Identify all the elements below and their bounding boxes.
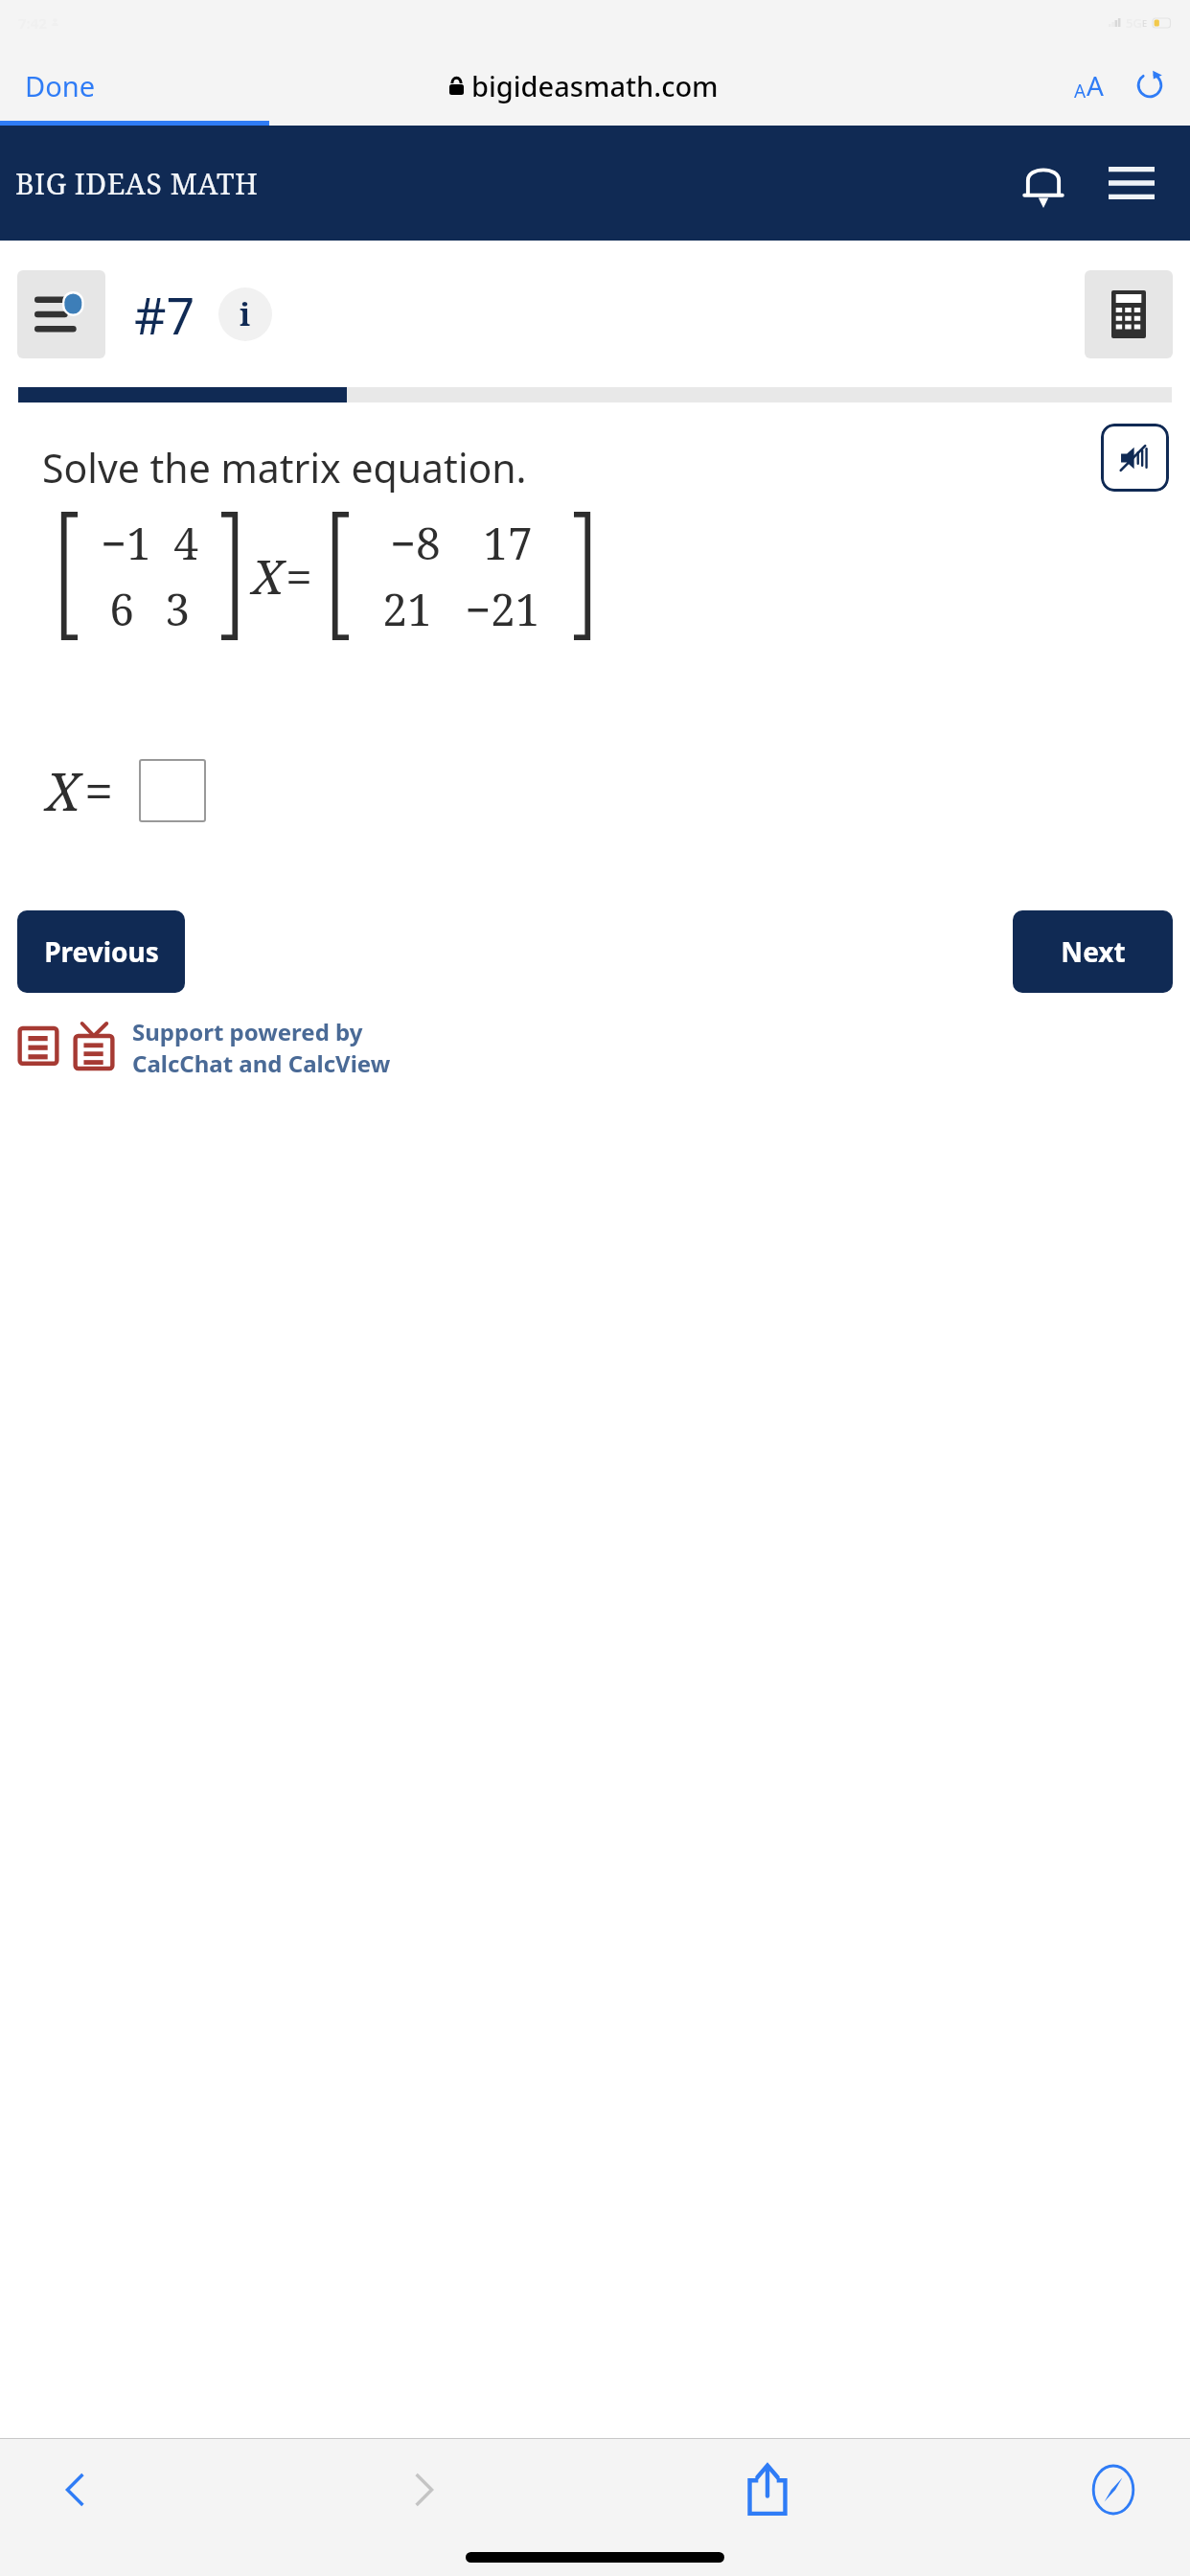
button[interactable]: Previous xyxy=(17,910,185,993)
staticText: Solve the matrix equation. xyxy=(42,441,1101,494)
button[interactable]: Menu xyxy=(1096,148,1167,218)
staticText: i xyxy=(240,293,251,335)
button[interactable]: Next xyxy=(1013,910,1173,993)
staticText: 6 xyxy=(109,579,134,639)
staticText: Done xyxy=(25,67,95,104)
staticText: E xyxy=(1142,17,1148,29)
button[interactable]: Calculator xyxy=(1085,270,1173,358)
button[interactable]: Forward xyxy=(380,2448,465,2532)
staticText: 21 xyxy=(382,579,432,639)
staticText: X xyxy=(252,543,284,609)
staticText: 17 xyxy=(483,513,533,573)
button[interactable]: Back xyxy=(34,2448,119,2532)
button[interactable]: Information xyxy=(218,287,272,341)
staticText: 3 xyxy=(165,579,190,639)
button[interactable]: Done xyxy=(21,59,99,112)
staticText: bigideasmath.com xyxy=(471,67,719,104)
button[interactable]: Notifications xyxy=(1008,148,1079,218)
staticText: BIG IDEAS MATH xyxy=(15,164,259,203)
staticText: = xyxy=(286,543,312,609)
button[interactable]: Mute audio xyxy=(1101,424,1169,492)
staticText: Support powered by xyxy=(132,1016,363,1047)
button[interactable]: Question list xyxy=(17,270,105,358)
staticText: A xyxy=(1087,67,1104,103)
staticText: #7 xyxy=(134,281,195,349)
staticText: −8 xyxy=(390,513,441,573)
button[interactable]: Reload xyxy=(1131,66,1169,104)
button[interactable]: Answer input xyxy=(139,759,206,822)
staticText: Next xyxy=(1061,933,1126,970)
staticText: −1 xyxy=(101,513,151,573)
staticText: Previous xyxy=(44,933,159,970)
staticText: −21 xyxy=(465,579,540,639)
button[interactable]: Share xyxy=(725,2448,810,2532)
staticText: = xyxy=(84,755,114,826)
staticText: CalcChat and CalcView xyxy=(132,1047,391,1079)
staticText: X xyxy=(46,755,80,826)
staticText: A xyxy=(1074,79,1087,103)
button[interactable]: Text size xyxy=(1068,59,1110,111)
staticText: 4 xyxy=(173,513,198,573)
button[interactable]: Open in Safari xyxy=(1071,2448,1156,2532)
